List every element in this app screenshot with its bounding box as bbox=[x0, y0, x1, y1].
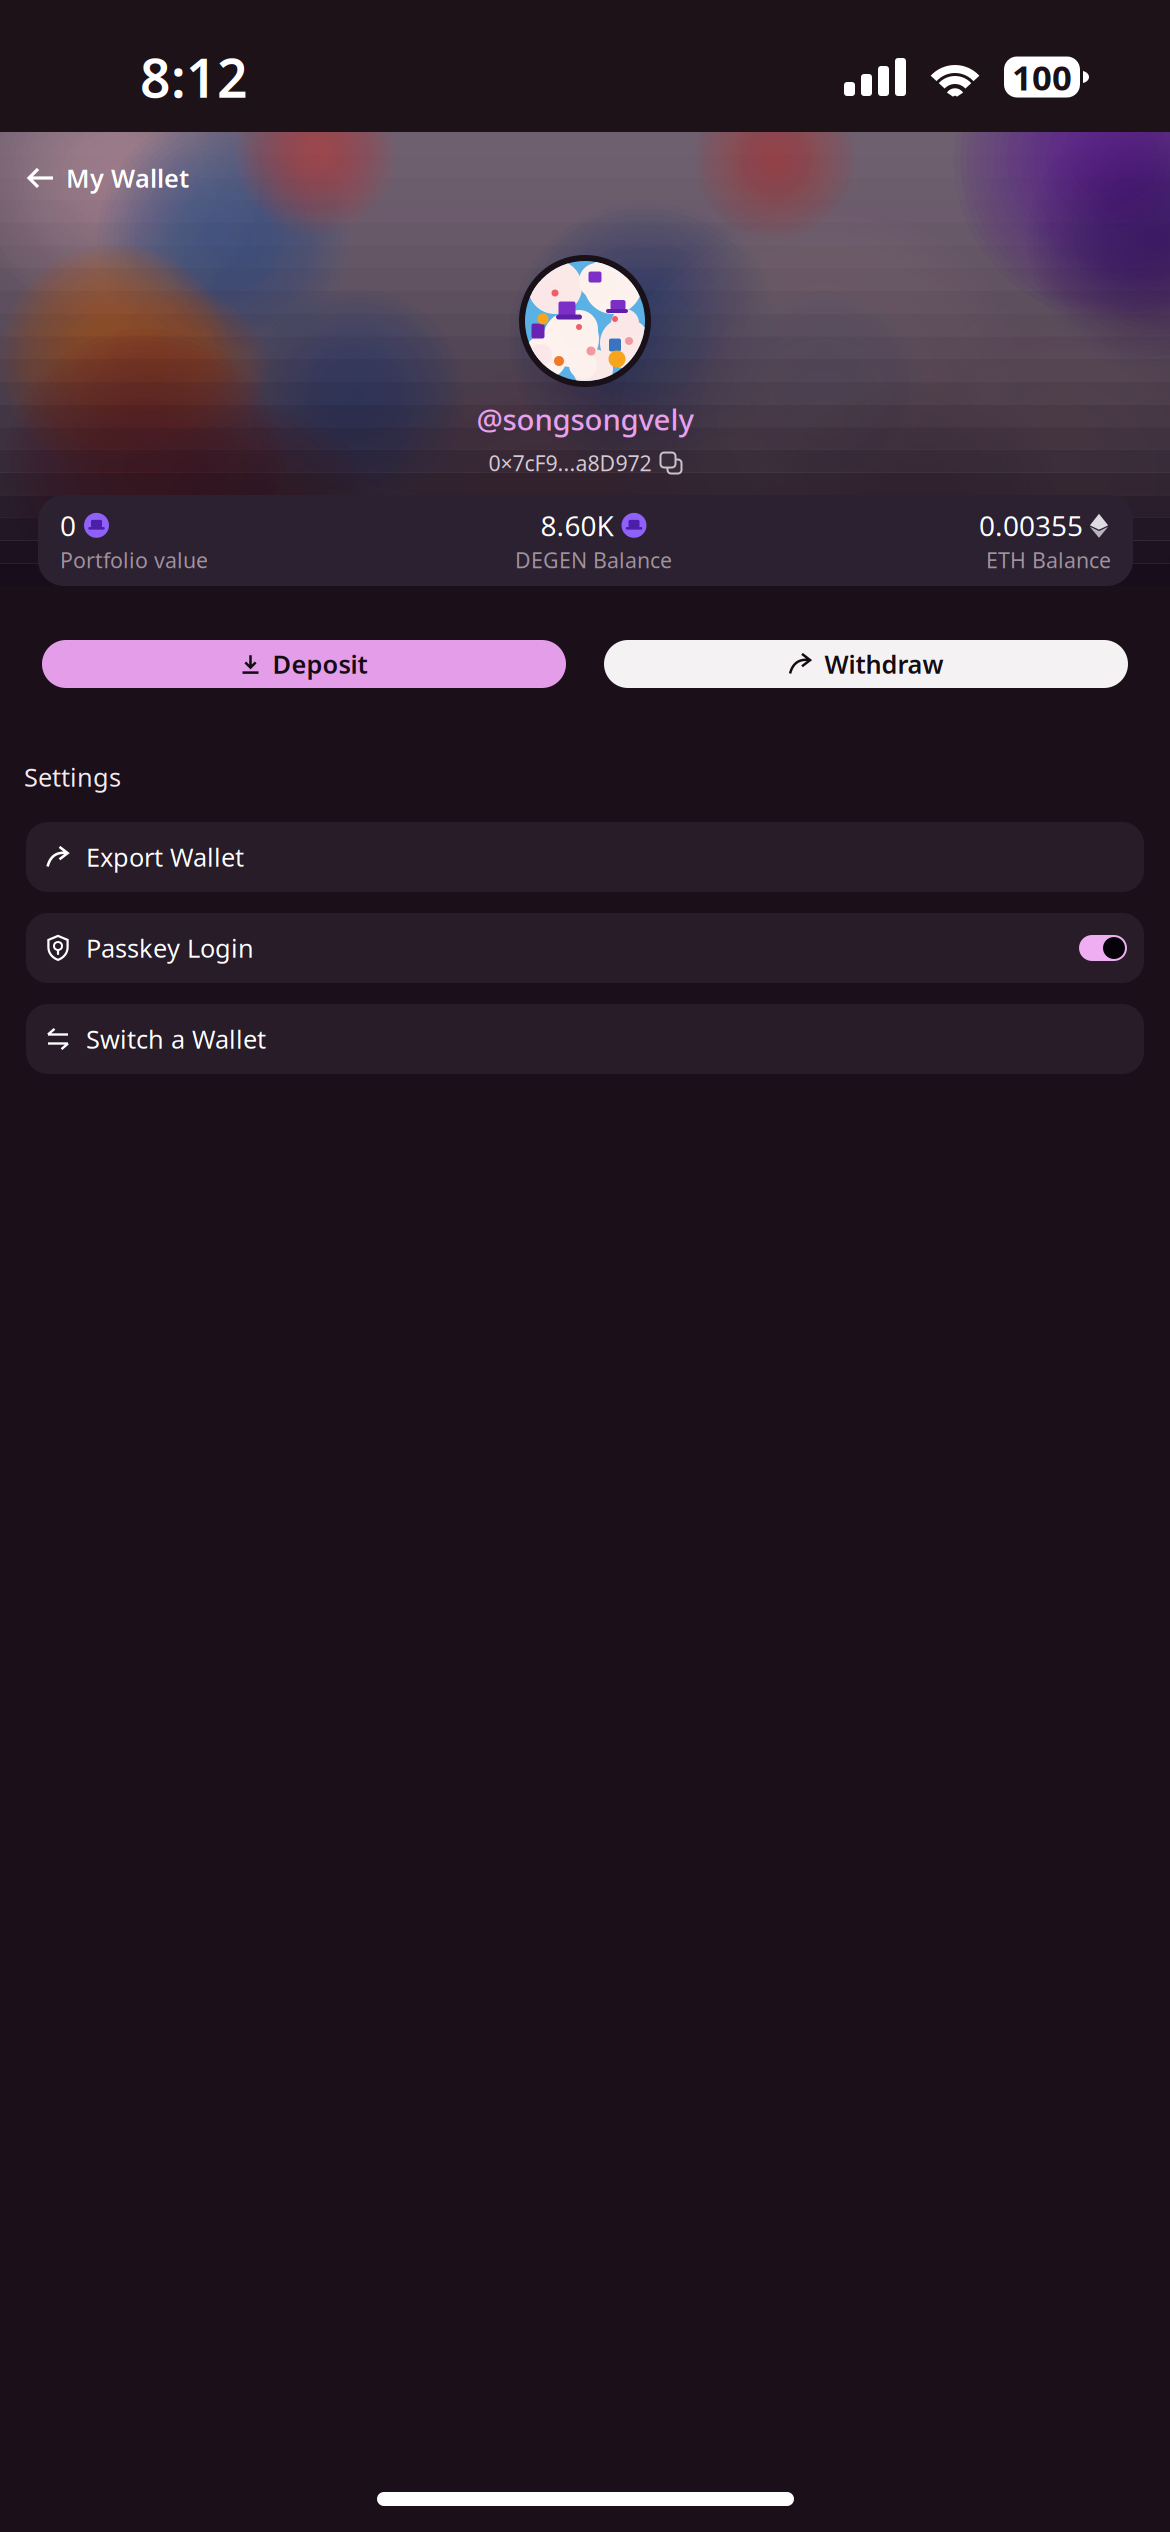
staticText: My Wallet bbox=[66, 161, 189, 195]
staticText: 0 bbox=[60, 507, 76, 544]
staticText: 0.00355 bbox=[979, 507, 1083, 544]
button[interactable]: 0×7cF9...a8D972 bbox=[488, 446, 681, 480]
staticText: @songsongvely bbox=[476, 399, 693, 438]
staticText: Export Wallet bbox=[86, 840, 244, 874]
button[interactable]: Export Wallet bbox=[26, 822, 1144, 892]
staticText: ETH Balance bbox=[986, 546, 1111, 574]
button[interactable]: Deposit bbox=[42, 640, 566, 688]
staticText: Settings bbox=[24, 760, 121, 794]
staticText: Switch a Wallet bbox=[86, 1022, 266, 1056]
button[interactable]: Switch a Wallet bbox=[26, 1004, 1144, 1074]
button[interactable]: Passkey Login bbox=[26, 913, 1144, 983]
staticText: Passkey Login bbox=[86, 931, 254, 965]
button[interactable]: My Wallet bbox=[0, 148, 216, 208]
staticText: Withdraw bbox=[824, 647, 943, 681]
staticText: 100 bbox=[1012, 54, 1072, 100]
staticText: 8:12 bbox=[140, 42, 248, 112]
staticText: DEGEN Balance bbox=[515, 546, 672, 574]
staticText: Deposit bbox=[272, 647, 367, 681]
staticText: 8.60K bbox=[540, 507, 613, 544]
staticText: 0×7cF9...a8D972 bbox=[488, 449, 651, 477]
button[interactable]: Withdraw bbox=[604, 640, 1128, 688]
staticText: Portfolio value bbox=[60, 546, 208, 574]
